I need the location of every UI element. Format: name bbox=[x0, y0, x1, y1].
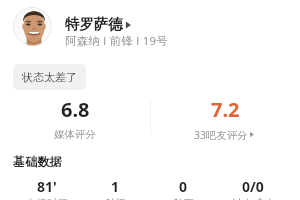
staticText: 81' bbox=[37, 177, 57, 196]
staticText: 基础数据 bbox=[13, 154, 62, 169]
staticText: 阿森纳 l 前锋 l 19号 bbox=[65, 33, 169, 49]
staticText: 射正 bbox=[173, 197, 194, 200]
staticText: 6.8 bbox=[61, 96, 90, 123]
button[interactable]: 0 bbox=[149, 177, 218, 200]
staticText: 33吧友评分 bbox=[194, 128, 248, 140]
staticText: 0 bbox=[179, 177, 188, 196]
staticText: 特罗萨德 bbox=[65, 15, 123, 33]
button[interactable]: 特罗萨德 bbox=[65, 15, 132, 33]
button[interactable]: 81' bbox=[13, 177, 81, 200]
staticText: 媒体评分 bbox=[54, 128, 96, 140]
staticText: 7.2 bbox=[211, 96, 240, 123]
staticText: 1 bbox=[111, 177, 120, 196]
button[interactable]: 7.2 bbox=[150, 96, 300, 140]
button[interactable]: 状态太差了 bbox=[13, 64, 86, 90]
button[interactable]: Player photo bbox=[13, 7, 52, 46]
button[interactable]: 6.8 bbox=[0, 96, 150, 140]
button[interactable]: 0/0 bbox=[218, 177, 287, 200]
staticText: 过人成功 bbox=[232, 197, 274, 200]
staticText: 出场时间 bbox=[26, 197, 68, 200]
staticText: 射门 bbox=[105, 197, 126, 200]
staticText: 状态太差了 bbox=[22, 70, 77, 84]
button[interactable]: 1 bbox=[81, 177, 149, 200]
staticText: 0/0 bbox=[242, 177, 264, 196]
